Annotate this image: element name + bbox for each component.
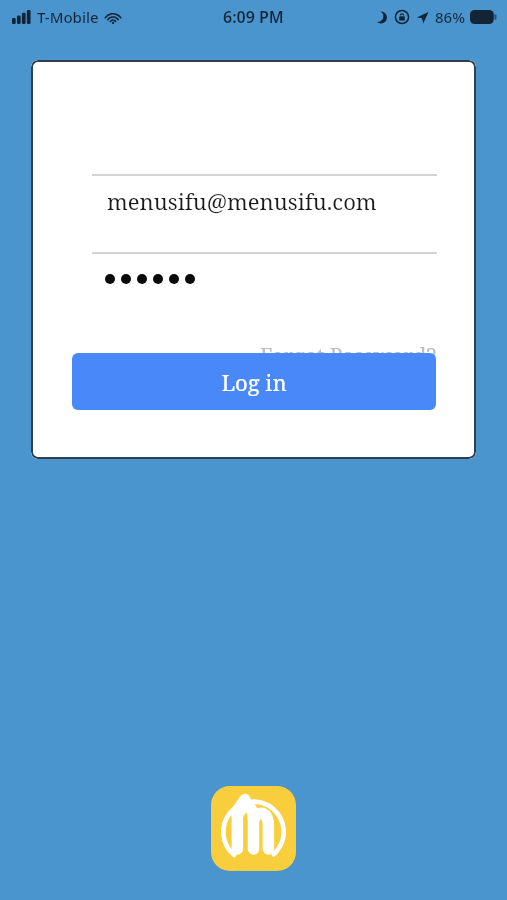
staticText: T-Mobile [37,7,99,27]
staticText: 86% [435,7,465,27]
button[interactable]: Forgot Password? [247,336,437,376]
button[interactable] [92,256,437,302]
button[interactable]: Log in [72,353,436,410]
other: MenuSifu logo [211,786,296,871]
staticText: 6:09 PM [223,6,284,28]
staticText: Forgot Password? [260,342,437,371]
button[interactable]: menusifu@menusifu.com [92,178,437,224]
staticText: Log in [221,367,287,397]
staticText: menusifu@menusifu.com [107,186,377,216]
